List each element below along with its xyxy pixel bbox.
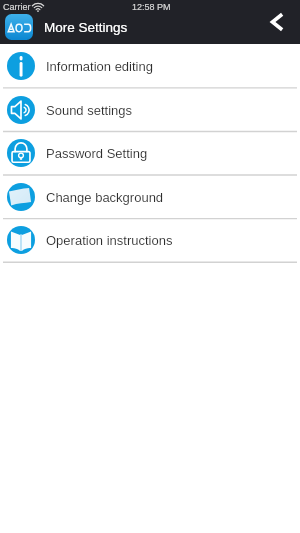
button[interactable]: Information editing (0, 44, 300, 88)
staticText: 12:58 PM (132, 2, 171, 12)
staticText: Change background (46, 190, 164, 205)
button[interactable]: Sound settings (0, 88, 300, 132)
staticText: Sound settings (46, 103, 133, 118)
staticText: Password Setting (46, 146, 148, 161)
staticText: More Settings (44, 20, 128, 35)
staticText: Carrier (3, 2, 31, 12)
button[interactable]: Password Setting (0, 131, 300, 175)
button[interactable]: Operation instructions (0, 218, 300, 262)
staticText: Operation instructions (46, 233, 173, 248)
button[interactable]: AOD logo (5, 14, 33, 40)
staticText: Information editing (46, 59, 153, 74)
button[interactable]: Back (262, 6, 292, 38)
button[interactable]: Change background (0, 175, 300, 219)
